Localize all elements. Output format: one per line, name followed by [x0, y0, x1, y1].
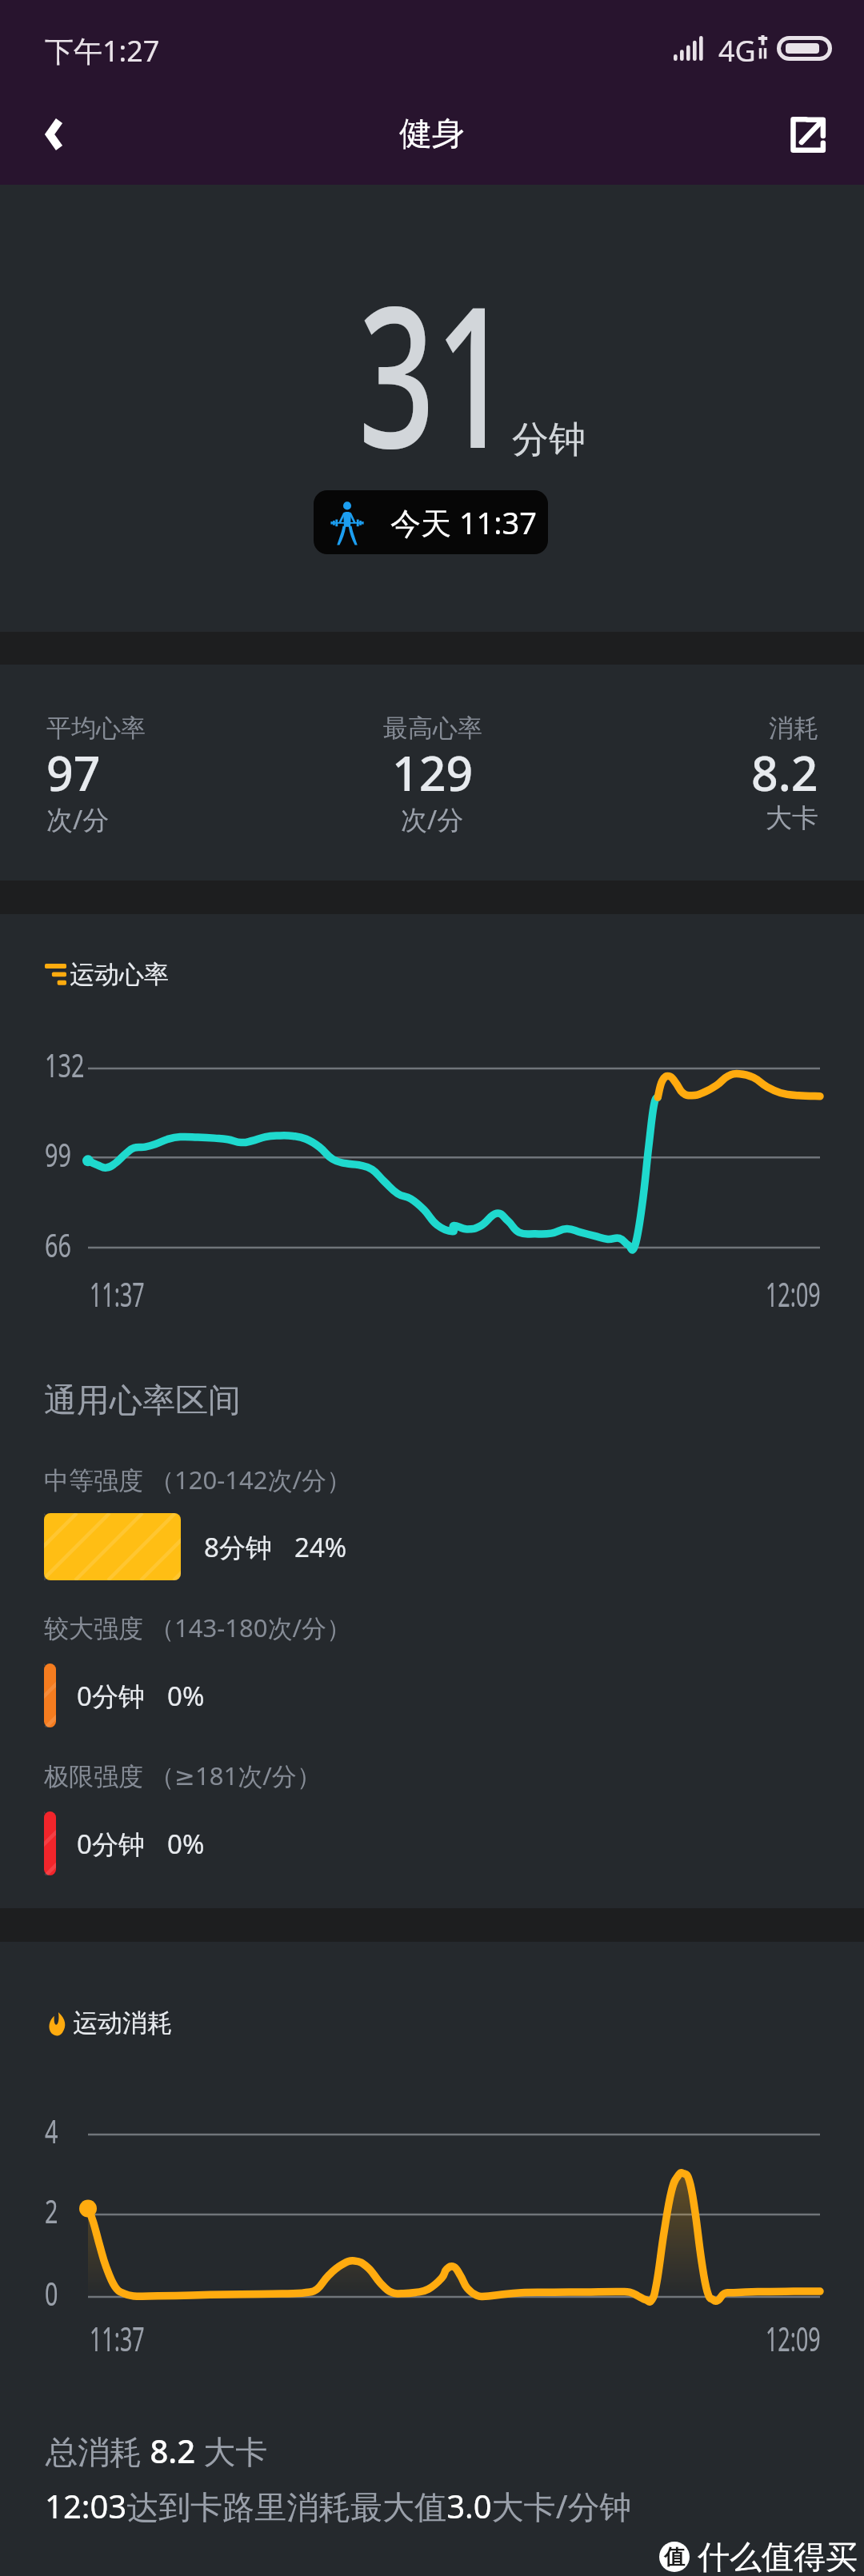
staticText: 什么值得买 [698, 2537, 858, 2576]
staticText: 11:37 [90, 1272, 145, 1316]
staticText: 129 [392, 741, 474, 805]
staticText: 平均心率 [46, 713, 146, 744]
staticText: 2 [45, 2189, 58, 2232]
staticText: 今天 11:37 [390, 501, 538, 543]
staticText: 12:09 [766, 1272, 821, 1316]
staticText: 值 [664, 2544, 685, 2570]
staticText: 132 [45, 1043, 85, 1086]
staticText: 消耗 [769, 713, 818, 744]
staticText: 24% [294, 1529, 347, 1565]
staticText: 12:09 [766, 2316, 821, 2361]
staticText: 0% [167, 1826, 205, 1862]
staticText: 运动心率 [70, 959, 169, 990]
staticText: 运动消耗 [73, 2007, 172, 2039]
staticText: 最高心率 [383, 713, 482, 744]
staticText: 8分钟 [204, 1529, 272, 1565]
staticText: 健身 [399, 114, 465, 155]
staticText: 99 [45, 1132, 71, 1176]
staticText: 0% [167, 1678, 205, 1714]
button[interactable]: 今天 11:37 [314, 490, 548, 554]
staticText: 下午1:27 [45, 31, 160, 70]
button[interactable]: Back [0, 84, 109, 185]
staticText: 0分钟 [77, 1678, 145, 1714]
staticText: 31 [358, 240, 512, 505]
staticText: 0分钟 [77, 1826, 145, 1862]
staticText: 次/分 [401, 801, 464, 837]
staticText: 66 [45, 1223, 71, 1266]
staticText: 0 [45, 2271, 58, 2314]
staticText: 分钟 [512, 417, 586, 463]
staticText: 通用心率区间 [44, 1380, 241, 1422]
staticText: 总消耗 8.2 大卡 [46, 2429, 268, 2473]
staticText: 4G [718, 31, 756, 70]
staticText: 8.2 [751, 741, 818, 805]
button[interactable]: Share [753, 84, 862, 185]
staticText: 中等强度 （120-142次/分） [44, 1463, 351, 1496]
staticText: 较大强度 （143-180次/分） [44, 1611, 351, 1644]
staticText: 大卡 [766, 801, 818, 835]
staticText: 4 [45, 2109, 58, 2152]
staticText: 11:37 [90, 2316, 145, 2361]
staticText: 次/分 [46, 801, 110, 837]
staticText: 12:03达到卡路里消耗最大值3.0大卡/分钟 [45, 2484, 632, 2528]
staticText: 极限强度 （≥181次/分） [44, 1759, 322, 1792]
staticText: 97 [46, 741, 101, 805]
